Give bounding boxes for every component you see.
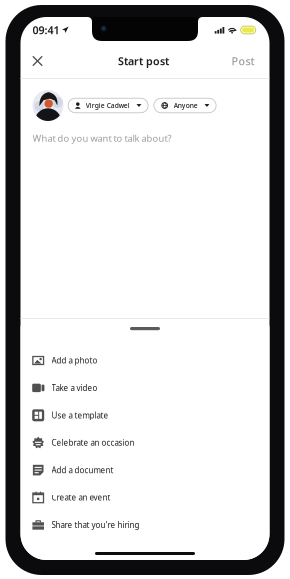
button[interactable]: Create an event xyxy=(20,484,269,511)
staticText: Use a template xyxy=(52,410,109,421)
staticText: Take a video xyxy=(52,383,98,393)
button[interactable]: Virgie Cadwel xyxy=(68,98,148,113)
staticText: Anyone xyxy=(174,101,198,110)
button[interactable]: Post xyxy=(224,46,269,76)
staticText: What do you want to talk about? xyxy=(32,132,171,144)
staticText: Start post xyxy=(118,54,169,68)
button[interactable]: Anyone xyxy=(154,98,216,113)
button[interactable]: Use a template xyxy=(20,402,269,429)
button[interactable]: Add a photo xyxy=(20,347,269,374)
staticText: 09:41 xyxy=(32,23,59,37)
button[interactable]: Add a document xyxy=(20,456,269,484)
button[interactable]: Close xyxy=(20,46,62,76)
staticText: Post xyxy=(231,54,254,68)
staticText: Share that you're hiring xyxy=(52,520,140,530)
button[interactable]: Celebrate an occasion xyxy=(20,429,269,456)
staticText: Create an event xyxy=(52,492,111,503)
button[interactable]: Take a video xyxy=(20,374,269,402)
staticText: Celebrate an occasion xyxy=(52,437,135,448)
staticText: Virgie Cadwel xyxy=(86,101,130,110)
staticText: Add a document xyxy=(52,465,114,475)
staticText: Add a photo xyxy=(52,355,98,366)
button[interactable]: Share that you're hiring xyxy=(20,511,269,539)
